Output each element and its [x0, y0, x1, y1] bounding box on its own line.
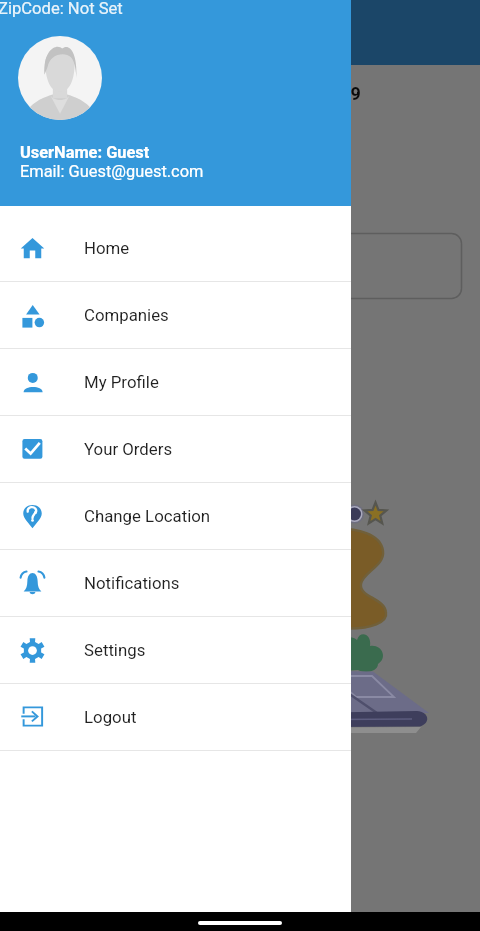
button[interactable]: Change Location [0, 483, 351, 550]
staticText: UserName: Guest [20, 143, 150, 162]
staticText: Home [64, 22, 116, 44]
staticText: Companies [84, 305, 169, 325]
staticText: Email: Guest@guest.com [20, 162, 204, 181]
staticText: Change Location [84, 506, 211, 526]
button[interactable]: Settings [0, 617, 351, 684]
button[interactable]: Open navigation drawer [0, 0, 56, 65]
button[interactable]: Your Orders [0, 416, 351, 483]
button[interactable]: My Profile [0, 349, 351, 416]
staticText: Home [84, 238, 130, 258]
staticText: Your Orders [84, 439, 173, 459]
button[interactable]: Logout [0, 684, 351, 751]
button[interactable]: Notifications [0, 550, 351, 617]
staticText: Notifications [84, 573, 180, 593]
staticText: Hi, 9 [324, 83, 361, 104]
button[interactable]: Home [0, 215, 351, 282]
button[interactable]: Close navigation drawer [0, 0, 480, 931]
staticText: ZipCode: Not Set [0, 0, 123, 18]
staticText: Logout [84, 707, 137, 727]
staticText: Settings [84, 640, 146, 660]
staticText: My Profile [84, 372, 159, 392]
button[interactable]: Companies [0, 282, 351, 349]
